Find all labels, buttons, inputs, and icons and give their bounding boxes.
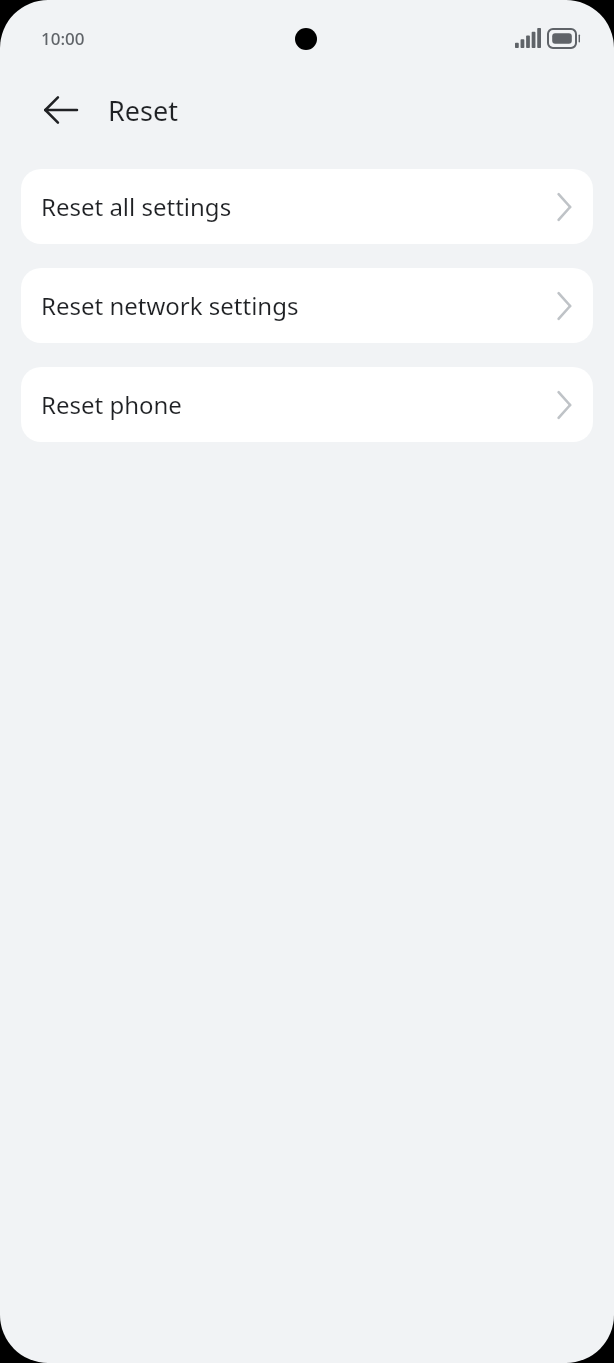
staticText: Reset all settings — [41, 190, 557, 223]
staticText: Reset network settings — [41, 289, 557, 322]
staticText: 10:00 — [41, 27, 85, 50]
button[interactable]: Reset network settings — [21, 268, 593, 343]
staticText: Reset — [108, 92, 178, 129]
button[interactable]: Back — [31, 80, 91, 140]
button[interactable]: Reset all settings — [21, 169, 593, 244]
button[interactable]: Reset phone — [21, 367, 593, 442]
staticText: Reset phone — [41, 388, 557, 421]
